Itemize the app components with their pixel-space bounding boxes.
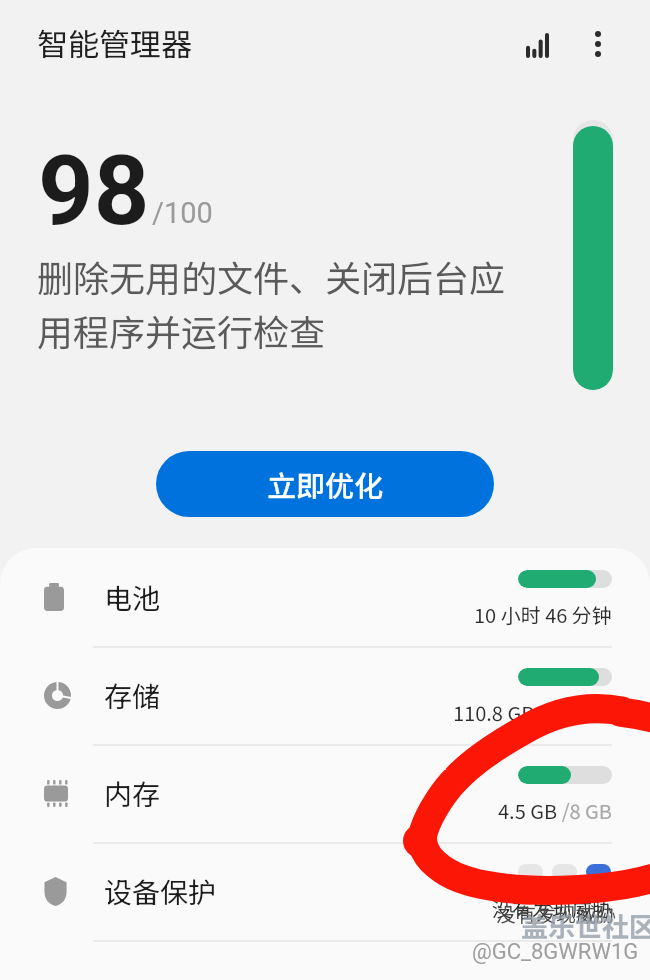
staticText: 内存: [104, 773, 161, 814]
staticText: 10 小时 46 分钟: [474, 600, 612, 629]
button[interactable]: Signal strength: [509, 17, 565, 73]
button[interactable]: 内存: [0, 744, 650, 842]
staticText: 立即优化: [267, 463, 384, 505]
button[interactable]: 立即优化: [156, 451, 494, 517]
staticText: 存储: [104, 675, 161, 716]
staticText: 智能管理器: [37, 20, 192, 65]
staticText: 删除无用的文件、关闭后台应用程序并运行检查: [37, 250, 522, 357]
staticText: 4.5 GB /8 GB: [498, 796, 612, 825]
staticText: 没有发现威胁: [492, 894, 612, 923]
staticText: /100: [152, 196, 213, 230]
staticText: 没有发现威胁: [496, 899, 616, 928]
staticText: 盖乐世社区: [521, 906, 650, 945]
staticText: 电池: [104, 577, 161, 618]
staticText: 98: [38, 134, 150, 248]
button[interactable]: More options: [570, 16, 626, 72]
staticText: @GC_8GWRW1G: [472, 939, 639, 965]
button[interactable]: 存储: [0, 646, 650, 744]
button[interactable]: 电池: [0, 548, 650, 646]
staticText: 110.8 GB /128 GB: [453, 698, 612, 727]
button[interactable]: 设备保护: [0, 842, 650, 940]
staticText: 设备保护: [104, 871, 217, 912]
